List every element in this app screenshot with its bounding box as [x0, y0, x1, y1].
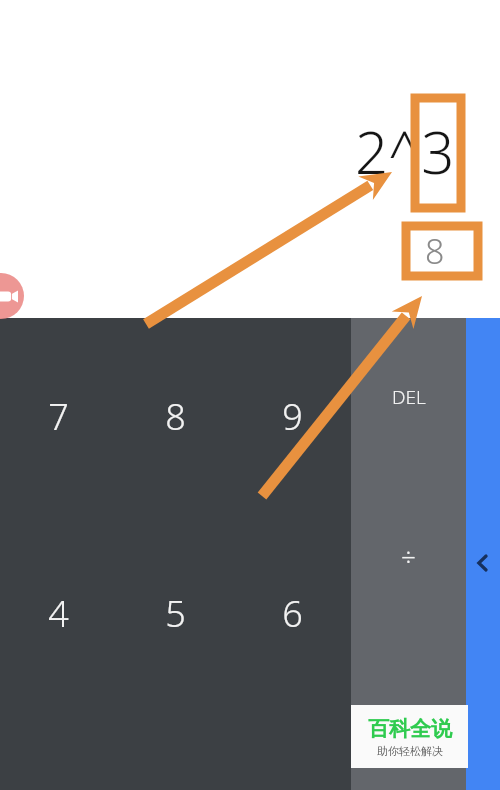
button[interactable]: 8: [117, 318, 234, 515]
button[interactable]: Screen recorder: [0, 273, 24, 319]
staticText: 2^3: [355, 112, 455, 191]
staticText: 8: [425, 228, 445, 274]
staticText: 5: [165, 589, 186, 638]
staticText: 9: [282, 392, 303, 441]
button[interactable]: 4: [0, 515, 117, 712]
button[interactable]: Back: [466, 318, 500, 790]
button[interactable]: DEL: [351, 318, 466, 476]
button[interactable]: 7: [0, 318, 117, 515]
button[interactable]: 6: [234, 515, 351, 712]
staticText: ÷: [401, 538, 416, 573]
staticText: 百科全说: [368, 716, 452, 742]
staticText: 4: [48, 589, 69, 638]
button[interactable]: ×: [351, 634, 466, 790]
staticText: ×: [401, 696, 416, 731]
button[interactable]: 5: [117, 515, 234, 712]
staticText: 8: [165, 392, 186, 441]
staticText: 助你轻松解决: [377, 744, 443, 758]
staticText: 6: [282, 589, 303, 638]
button[interactable]: 9: [234, 318, 351, 515]
button[interactable]: ÷: [351, 476, 466, 634]
staticText: DEL: [392, 384, 426, 410]
staticText: 7: [48, 392, 69, 441]
